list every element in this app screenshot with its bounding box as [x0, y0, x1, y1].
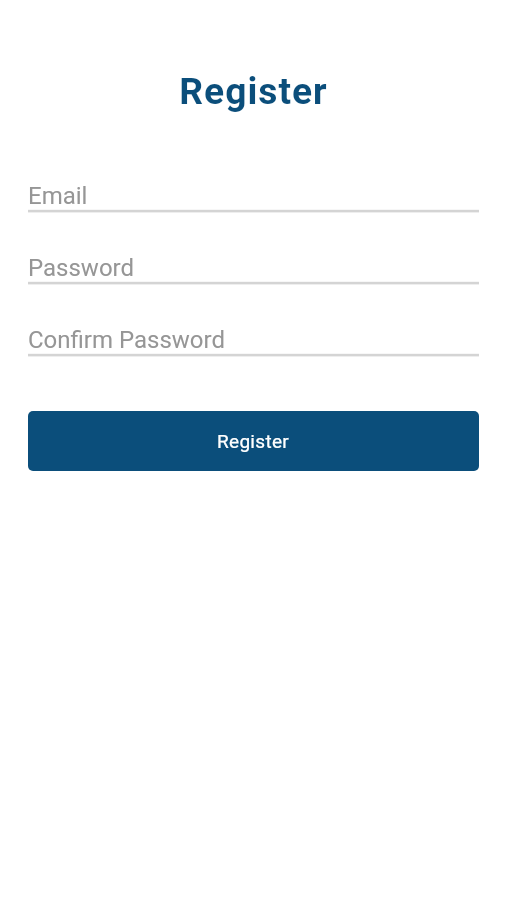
staticText: Confirm Password [28, 326, 226, 354]
button[interactable]: Register [28, 411, 479, 471]
button[interactable]: Confirm Password text field [28, 326, 479, 357]
staticText: Password [28, 254, 135, 282]
staticText: Register [217, 430, 290, 452]
button[interactable]: Email text field [28, 182, 479, 213]
staticText: Register [0, 69, 507, 113]
button[interactable]: Password text field [28, 254, 479, 285]
staticText: Email [28, 182, 88, 210]
